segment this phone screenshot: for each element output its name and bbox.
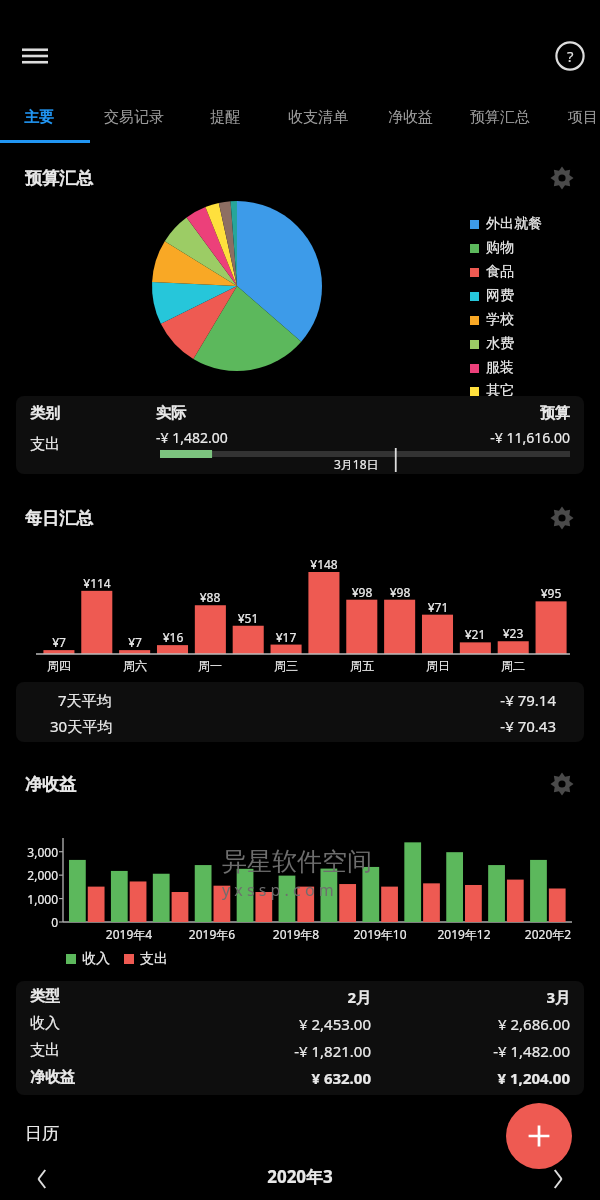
staticText: 2019年8 bbox=[258, 926, 334, 942]
staticText: ¥ 2,453.00 bbox=[166, 1014, 371, 1034]
staticText: 收入 bbox=[30, 1014, 60, 1033]
staticText: -¥ 11,616.00 bbox=[490, 428, 570, 447]
staticText: 外出就餐 bbox=[486, 215, 542, 233]
staticText: 周四 bbox=[41, 658, 77, 673]
staticText: 2,000 bbox=[8, 867, 58, 883]
staticText: 周日 bbox=[420, 658, 456, 673]
button[interactable]: Daily summary settings bbox=[540, 498, 584, 538]
staticText: 类别 bbox=[30, 404, 60, 423]
staticText: 3月 bbox=[376, 987, 570, 1007]
button[interactable]: 7天平均 bbox=[16, 682, 584, 742]
staticText: 1,000 bbox=[8, 891, 58, 907]
staticText: 2019年12 bbox=[426, 926, 502, 942]
staticText: ¥23 bbox=[494, 625, 532, 641]
staticText: ¥16 bbox=[154, 629, 192, 645]
staticText: ¥7 bbox=[40, 634, 78, 650]
staticText: ¥88 bbox=[191, 589, 229, 605]
staticText: 日历 bbox=[25, 1123, 59, 1144]
staticText: -¥ 1,821.00 bbox=[166, 1041, 371, 1061]
staticText: 每日汇总 bbox=[25, 508, 93, 529]
button[interactable]: Net income settings bbox=[540, 764, 584, 804]
button[interactable]: 交易记录 bbox=[94, 96, 174, 138]
staticText: 2020年2 bbox=[510, 926, 586, 942]
staticText: 周三 bbox=[268, 658, 304, 673]
button[interactable]: 项目 bbox=[558, 96, 600, 138]
staticText: 网费 bbox=[486, 287, 514, 305]
staticText: -¥ 70.43 bbox=[500, 716, 556, 736]
staticText: ¥51 bbox=[229, 610, 267, 626]
staticText: y x s s p . c o m bbox=[222, 879, 334, 901]
staticText: 周二 bbox=[495, 658, 531, 673]
staticText: ¥17 bbox=[267, 629, 305, 645]
staticText: 3月18日 bbox=[334, 456, 379, 472]
staticText: 类型 bbox=[30, 987, 60, 1006]
staticText: 收支清单 bbox=[288, 108, 348, 127]
staticText: 学校 bbox=[486, 311, 514, 329]
staticText: ¥95 bbox=[532, 585, 570, 601]
button[interactable]: 收支清单 bbox=[278, 96, 358, 138]
staticText: 周一 bbox=[192, 658, 228, 673]
staticText: 收入 bbox=[82, 950, 110, 968]
button[interactable]: 类型 bbox=[16, 981, 584, 1095]
staticText: 30天平均 bbox=[50, 716, 113, 736]
staticText: 实际 bbox=[156, 404, 186, 423]
staticText: ¥ 1,204.00 bbox=[376, 1068, 570, 1088]
staticText: 2月 bbox=[166, 987, 371, 1007]
staticText: ¥ 632.00 bbox=[166, 1068, 371, 1088]
staticText: 周五 bbox=[344, 658, 380, 673]
staticText: 0 bbox=[8, 914, 58, 930]
staticText: 预算 bbox=[540, 404, 570, 423]
staticText: 异星软件空间 bbox=[222, 846, 372, 877]
button[interactable]: Help bbox=[545, 31, 595, 81]
staticText: 预算汇总 bbox=[25, 168, 93, 189]
staticText: ¥21 bbox=[456, 626, 494, 642]
staticText: 净收益 bbox=[30, 1068, 75, 1087]
button[interactable]: 类别 bbox=[16, 396, 584, 474]
button[interactable]: 净收益 bbox=[378, 96, 443, 138]
staticText: ¥148 bbox=[305, 556, 343, 572]
staticText: 净收益 bbox=[388, 108, 433, 127]
staticText: 7天平均 bbox=[58, 690, 112, 710]
button[interactable]: Menu bbox=[10, 31, 60, 81]
staticText: 2019年10 bbox=[342, 926, 418, 942]
staticText: 服装 bbox=[486, 359, 514, 377]
staticText: 预算汇总 bbox=[470, 108, 530, 127]
staticText: ¥114 bbox=[78, 575, 116, 591]
button[interactable]: 提醒 bbox=[200, 96, 250, 138]
staticText: ? bbox=[567, 46, 574, 66]
staticText: -¥ 79.14 bbox=[500, 690, 556, 710]
staticText: ¥98 bbox=[343, 584, 381, 600]
staticText: 支出 bbox=[140, 950, 168, 968]
staticText: 3,000 bbox=[8, 844, 58, 860]
button[interactable]: Previous month bbox=[22, 1159, 62, 1199]
staticText: 2019年4 bbox=[91, 926, 167, 942]
staticText: 购物 bbox=[486, 239, 514, 257]
button[interactable]: 预算汇总 bbox=[460, 96, 540, 138]
staticText: ¥71 bbox=[419, 599, 457, 615]
button[interactable]: Budget settings bbox=[540, 158, 584, 198]
staticText: 支出 bbox=[30, 435, 60, 454]
staticText: 周六 bbox=[117, 658, 153, 673]
staticText: ¥7 bbox=[116, 634, 154, 650]
staticText: 2020年3 bbox=[0, 1165, 600, 1188]
staticText: 提醒 bbox=[210, 108, 240, 127]
staticText: 2019年6 bbox=[174, 926, 250, 942]
staticText: 项目 bbox=[568, 108, 598, 127]
button[interactable]: 主要 bbox=[14, 96, 64, 138]
staticText: 交易记录 bbox=[104, 108, 164, 127]
staticText: 其它 bbox=[486, 382, 514, 400]
staticText: 支出 bbox=[30, 1041, 60, 1060]
staticText: 主要 bbox=[24, 108, 54, 127]
staticText: ¥ 2,686.00 bbox=[376, 1014, 570, 1034]
staticText: 食品 bbox=[486, 263, 514, 281]
staticText: ¥98 bbox=[381, 584, 419, 600]
staticText: -¥ 1,482.00 bbox=[156, 428, 228, 447]
staticText: 水费 bbox=[486, 335, 514, 353]
staticText: -¥ 1,482.00 bbox=[376, 1041, 570, 1061]
button[interactable]: Next month bbox=[538, 1159, 578, 1199]
button[interactable]: Add transaction bbox=[506, 1103, 572, 1169]
staticText: 净收益 bbox=[25, 774, 76, 795]
